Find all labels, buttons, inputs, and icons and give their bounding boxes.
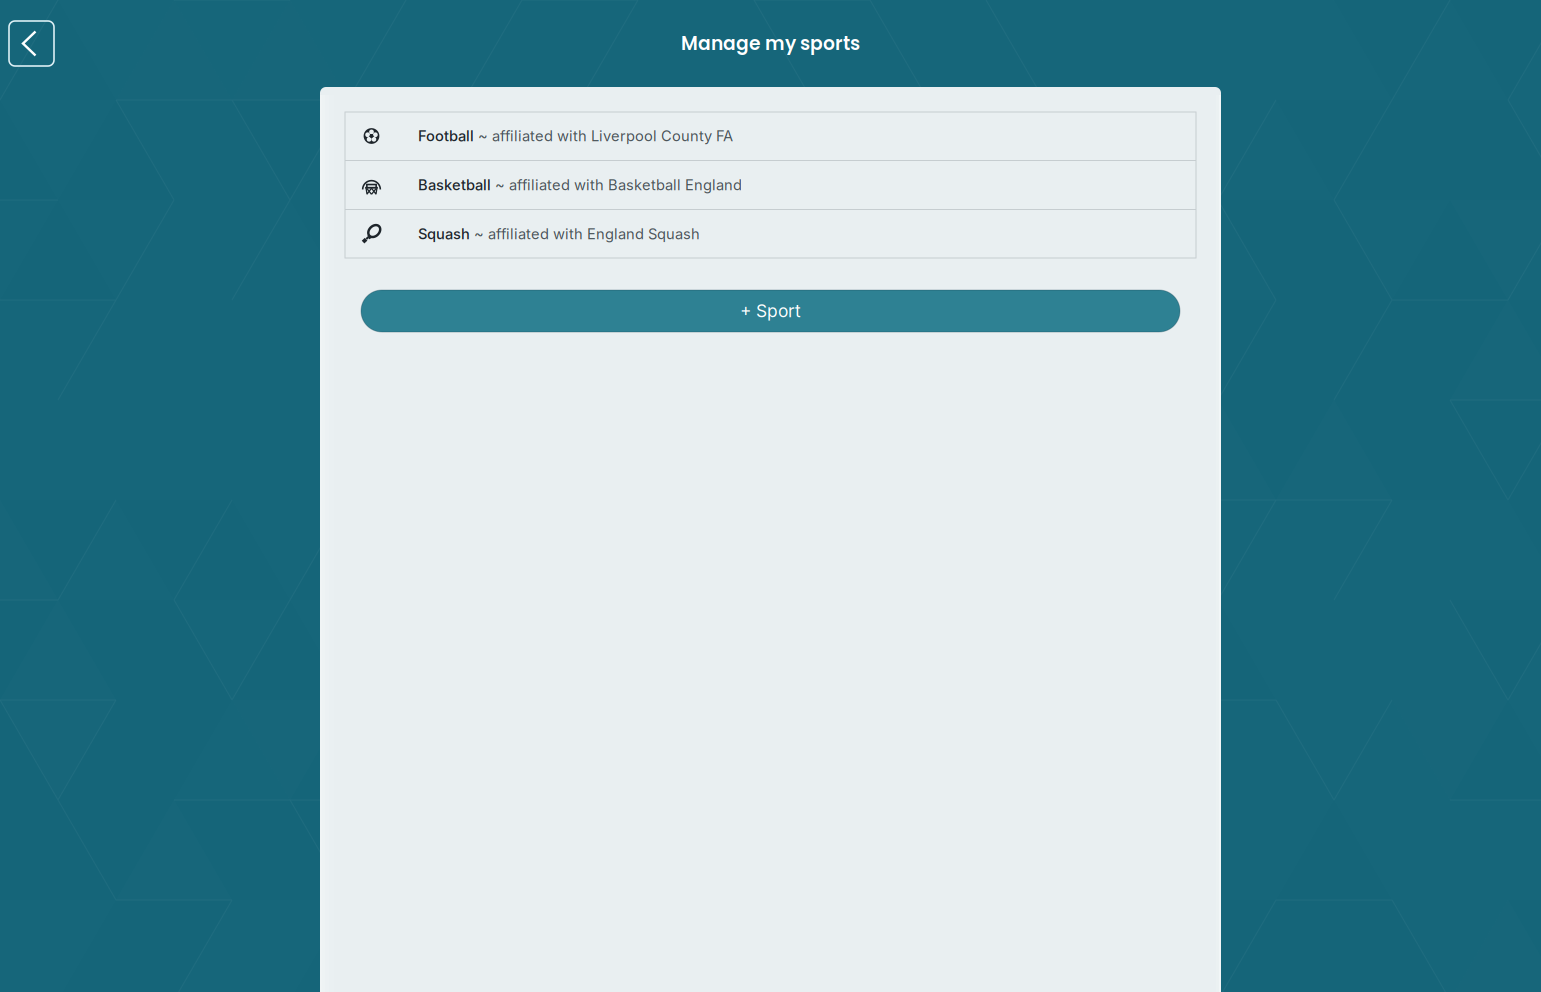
button[interactable]: + Sport xyxy=(361,290,1180,332)
staticText: + Sport xyxy=(740,300,801,321)
staticText: ~ affiliated with Basketball England xyxy=(491,176,742,194)
staticText: Basketball xyxy=(418,176,491,194)
button[interactable]: Back xyxy=(9,21,54,66)
staticText: Manage my sports xyxy=(681,30,860,56)
button[interactable]: Football xyxy=(345,112,1196,160)
staticText: ~ affiliated with England Squash xyxy=(470,225,700,243)
staticText: Squash xyxy=(418,225,470,243)
button[interactable]: Basketball xyxy=(345,161,1196,209)
staticText: Football xyxy=(418,127,474,145)
staticText: ~ affiliated with Liverpool County FA xyxy=(474,127,733,145)
button[interactable]: Squash xyxy=(345,210,1196,258)
